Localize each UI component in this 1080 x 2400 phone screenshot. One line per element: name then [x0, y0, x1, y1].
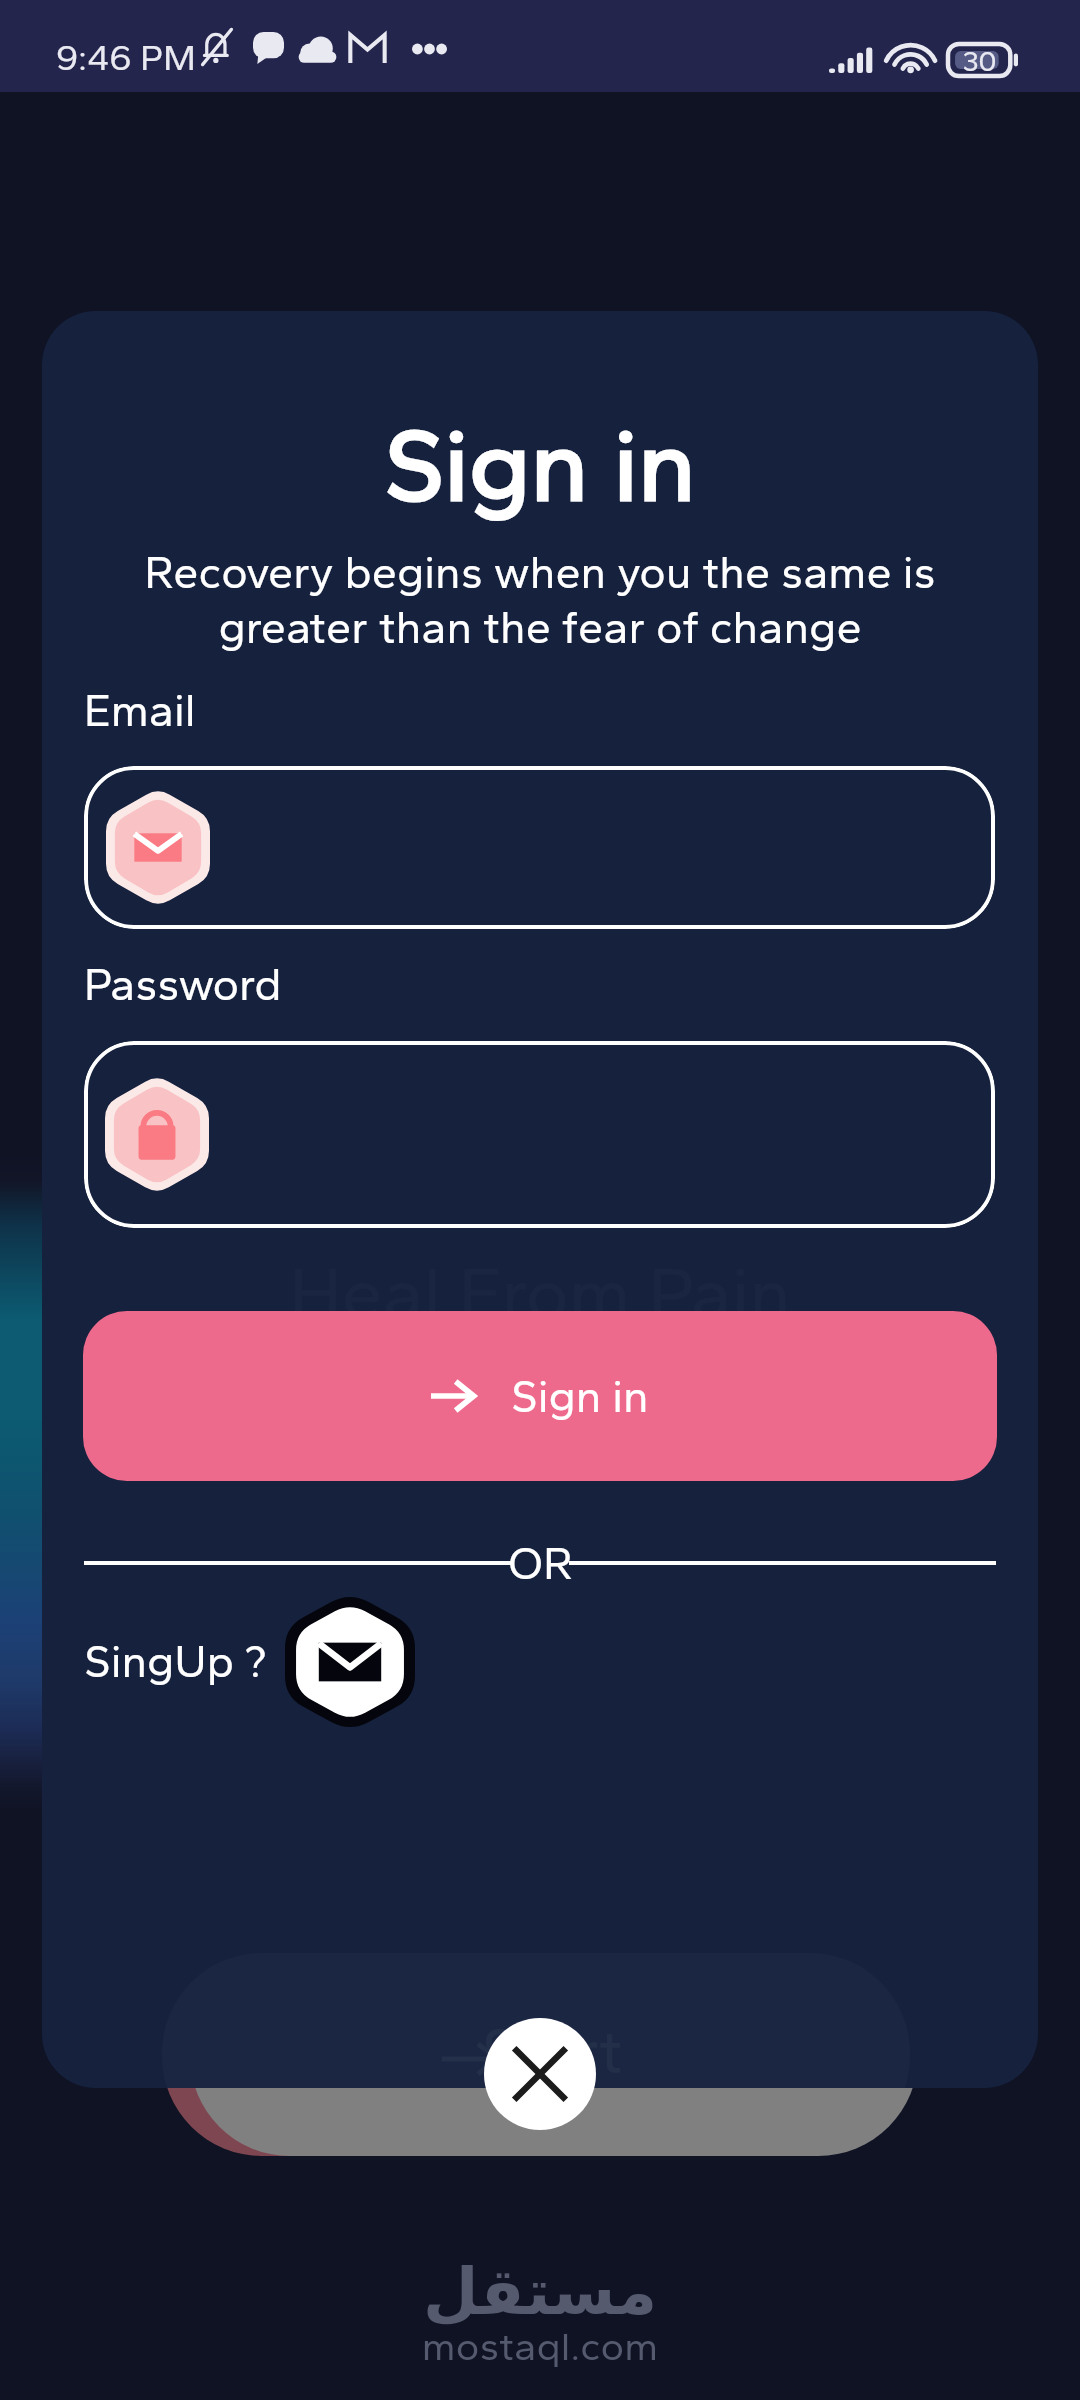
button[interactable] — [84, 1041, 995, 1228]
staticText: Heal From Pain — [84, 1249, 996, 1337]
button[interactable]: Sign in — [83, 1311, 997, 1481]
staticText: Sign in — [511, 1369, 649, 1423]
staticText: Start — [178, 2013, 926, 2087]
staticText: 9:46 PM — [56, 36, 196, 79]
staticText: OR — [508, 1536, 572, 1590]
staticText: Password — [84, 957, 282, 1011]
button[interactable]: Close — [484, 2018, 596, 2130]
staticText: Recovery begins when you the same is gre… — [42, 545, 1038, 655]
staticText: مستقل — [0, 2255, 1080, 2330]
button[interactable] — [84, 766, 995, 929]
staticText: 30 — [948, 44, 1011, 76]
button[interactable]: Sign up with email — [285, 1592, 415, 1732]
button[interactable]: SingUp ? — [84, 1634, 267, 1688]
staticText: mostaql.com — [0, 2322, 1080, 2370]
staticText: Sign in — [42, 403, 1038, 525]
staticText: Email — [84, 683, 196, 737]
